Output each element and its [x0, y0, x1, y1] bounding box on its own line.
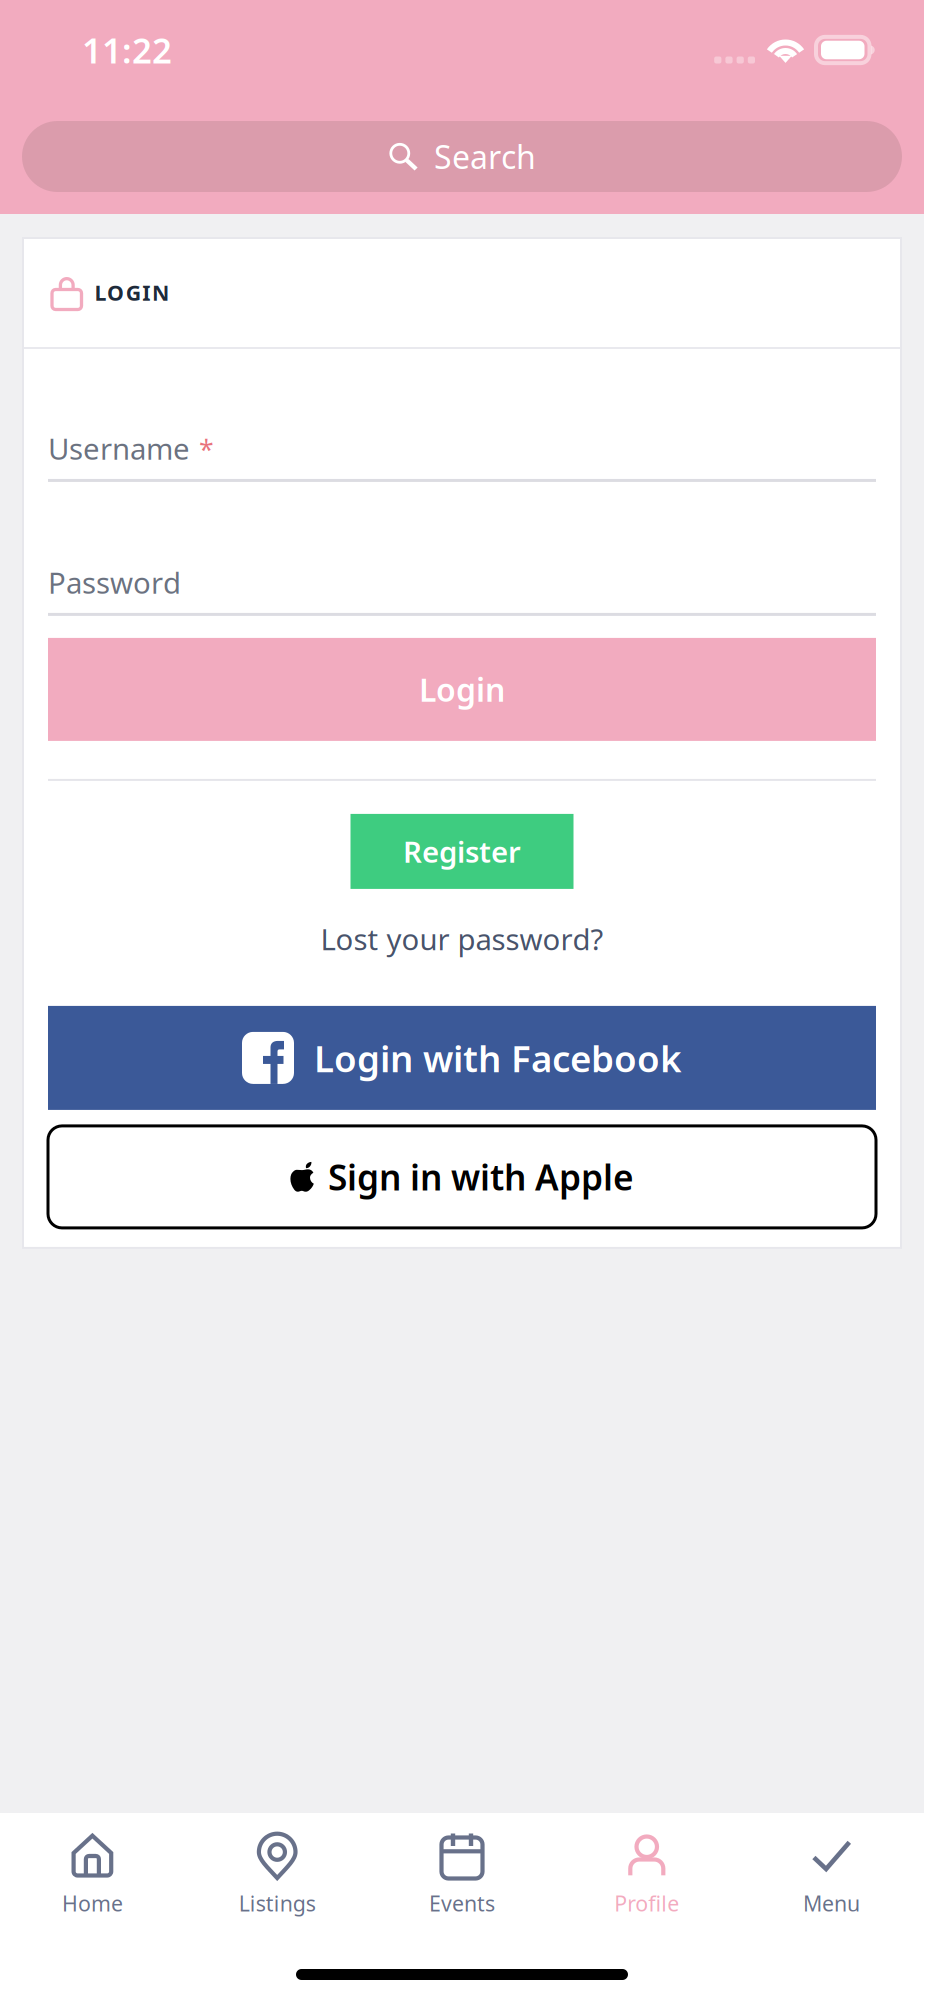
- staticText: LOGIN: [94, 278, 169, 307]
- staticText: Events: [429, 1889, 495, 1917]
- staticText: Search: [434, 135, 536, 178]
- button[interactable]: Login: [48, 638, 876, 741]
- staticText: Username: [48, 429, 190, 468]
- staticText: Listings: [239, 1889, 316, 1917]
- staticText: 11:22: [82, 27, 172, 73]
- staticText: Login with Facebook: [314, 1033, 682, 1083]
- staticText: Register: [403, 832, 521, 871]
- staticText: Lost your password?: [320, 919, 603, 958]
- button[interactable]: Register: [350, 814, 573, 889]
- staticText: Menu: [803, 1889, 860, 1917]
- button[interactable]: Search: [22, 121, 902, 192]
- staticText: Sign in with Apple: [328, 1153, 634, 1201]
- button[interactable]: Sign in with Apple: [48, 1126, 876, 1228]
- button[interactable]: Login with Facebook: [48, 1006, 876, 1110]
- button[interactable]: Menu: [739, 1813, 924, 1938]
- staticText: Password: [48, 563, 181, 602]
- staticText: *: [199, 432, 214, 467]
- button[interactable]: Home: [0, 1813, 185, 1938]
- button[interactable]: Profile: [554, 1813, 739, 1938]
- staticText: Profile: [614, 1889, 679, 1917]
- button[interactable]: Lost your password?: [320, 912, 603, 966]
- staticText: Login: [419, 668, 505, 711]
- button[interactable]: Listings: [185, 1813, 370, 1938]
- button[interactable]: Events: [370, 1813, 554, 1938]
- staticText: Home: [62, 1889, 123, 1917]
